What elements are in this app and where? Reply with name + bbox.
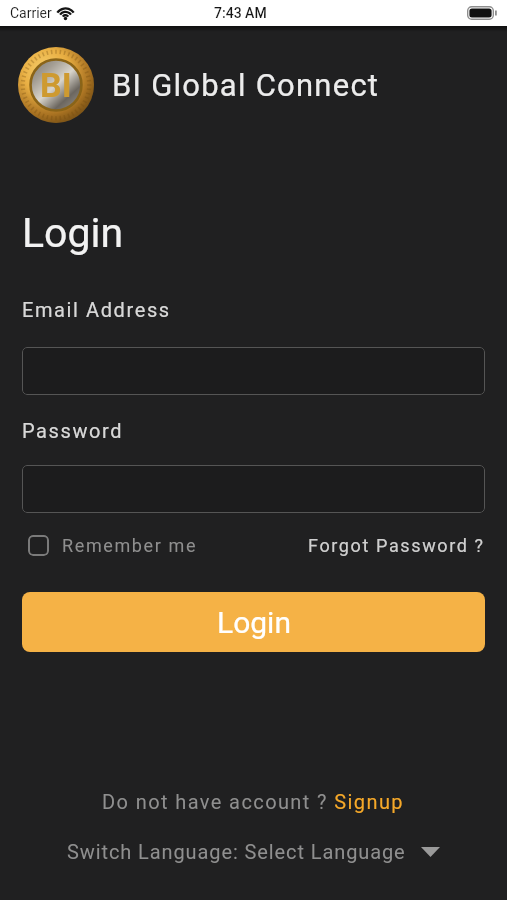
button[interactable] <box>22 465 485 513</box>
staticText: Do not have account ? Signup <box>102 790 405 813</box>
staticText: 7:43 AM <box>214 5 267 21</box>
staticText: BI <box>40 65 72 105</box>
staticText: Remember me <box>62 535 198 556</box>
button[interactable]: Forgot Password ? <box>308 535 485 556</box>
staticText: Password <box>22 419 124 442</box>
button[interactable]: Login <box>22 592 485 652</box>
staticText: Login <box>22 209 124 257</box>
staticText: Login <box>217 605 291 640</box>
button[interactable]: Switch Language: Select Language <box>67 840 440 863</box>
button[interactable] <box>22 347 485 395</box>
staticText: Switch Language: Select Language <box>67 840 406 863</box>
button[interactable]: Do not have account ? Signup <box>102 790 405 813</box>
staticText: Email Address <box>22 298 171 321</box>
staticText: BI Global Connect <box>112 67 380 103</box>
staticText: Carrier <box>10 5 52 21</box>
button[interactable]: Remember me <box>22 535 198 556</box>
